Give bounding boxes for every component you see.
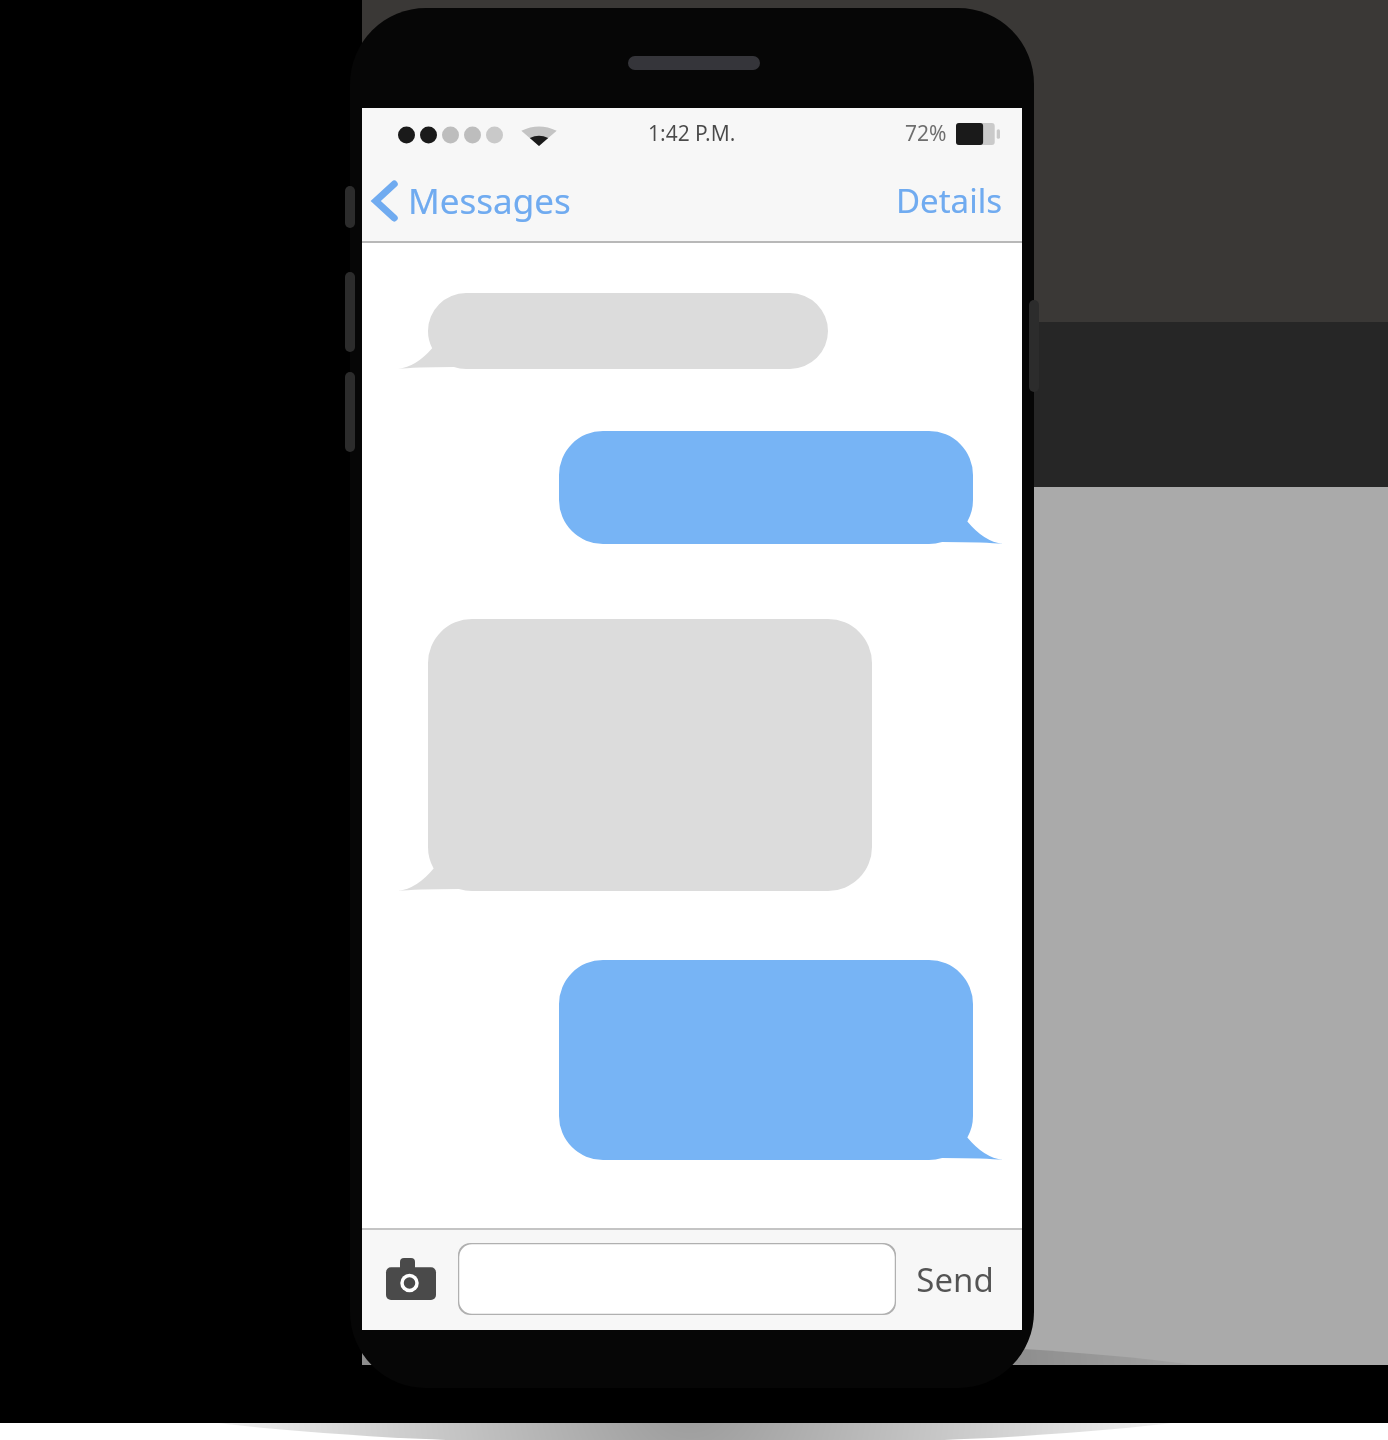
staticText: Details: [896, 178, 1002, 223]
button[interactable]: Message input: [458, 1243, 896, 1315]
button[interactable]: Messages: [362, 169, 585, 233]
button[interactable]: Sent message: [559, 960, 1003, 1160]
button[interactable]: Details: [876, 168, 1022, 233]
staticText: Messages: [408, 177, 571, 225]
button[interactable]: Camera: [380, 1252, 442, 1306]
button[interactable]: Sent message: [559, 431, 1003, 544]
staticText: 1:42 P.M.: [648, 119, 736, 148]
staticText: Send: [916, 1257, 994, 1302]
staticText: 72%: [905, 119, 947, 148]
button[interactable]: Send: [906, 1247, 1004, 1312]
button[interactable]: Received message: [398, 619, 872, 891]
button[interactable]: Received message: [398, 293, 828, 369]
